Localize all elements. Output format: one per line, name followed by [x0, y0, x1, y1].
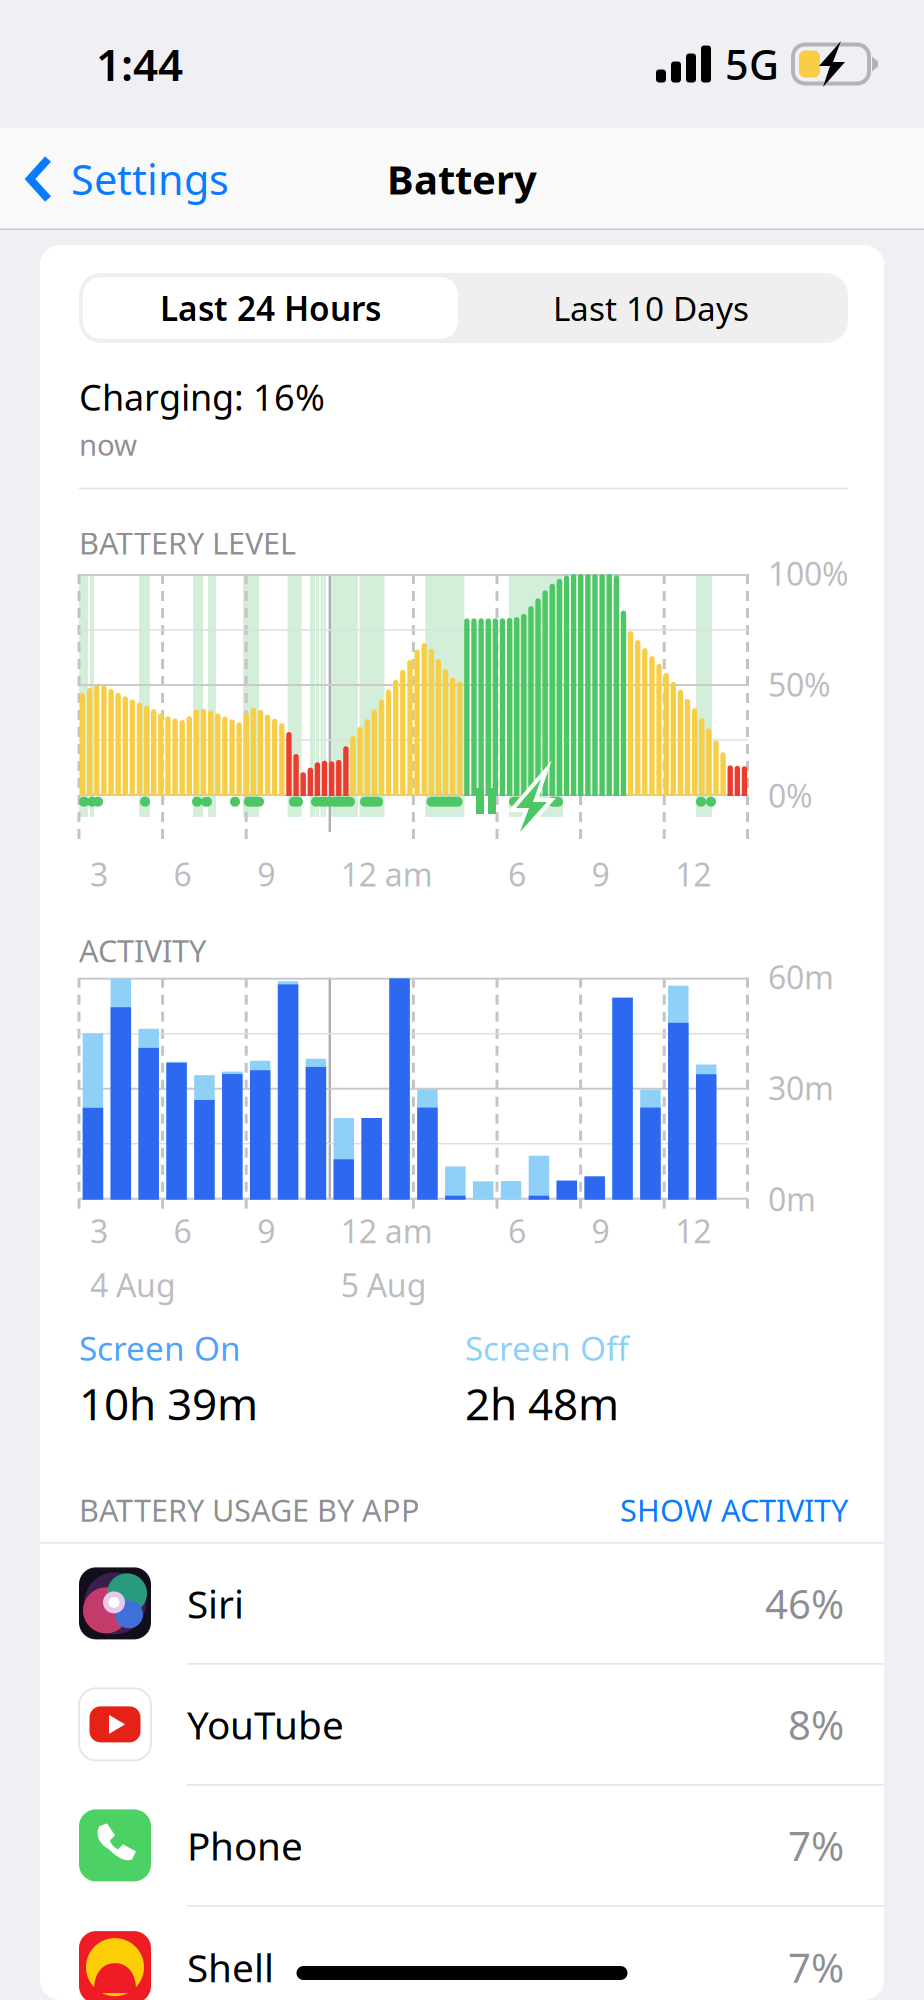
staticText: 9 — [257, 853, 275, 895]
staticText: 10h 39m — [79, 1374, 258, 1432]
staticText: 0% — [768, 774, 813, 816]
staticText: 7% — [788, 1941, 844, 1994]
staticText: Last 10 Days — [553, 286, 749, 330]
staticText: Charging: 16% — [79, 373, 325, 421]
staticText: now — [79, 425, 137, 464]
button[interactable]: Phone — [40, 1786, 884, 1907]
staticText: 60m — [768, 956, 834, 998]
staticText: Screen Off — [465, 1326, 629, 1370]
staticText: 46% — [765, 1577, 844, 1630]
staticText: Phone — [187, 1820, 303, 1871]
staticText: 100% — [768, 552, 849, 594]
button[interactable]: Last 24 Hours — [83, 277, 458, 339]
button[interactable]: YouTube — [40, 1665, 884, 1786]
staticText: 7% — [788, 1819, 844, 1872]
staticText: 50% — [768, 663, 831, 705]
staticText: 9 — [257, 1209, 275, 1252]
staticText: ACTIVITY — [79, 930, 206, 971]
staticText: Battery — [387, 152, 537, 205]
staticText: 30m — [768, 1067, 834, 1109]
staticText: 6 — [174, 1209, 192, 1252]
staticText: Last 24 Hours — [160, 286, 381, 330]
staticText: Siri — [187, 1578, 244, 1629]
staticText: 6 — [174, 853, 192, 895]
staticText: 4 Aug — [90, 1263, 176, 1306]
button[interactable]: Settings — [0, 128, 247, 230]
staticText: 12 am — [341, 1209, 433, 1252]
staticText: SHOW ACTIVITY — [620, 1489, 848, 1530]
staticText: 8% — [788, 1698, 844, 1751]
button[interactable]: Last 10 Days — [458, 277, 844, 339]
staticText: 9 — [592, 1209, 610, 1252]
staticText: 5G — [725, 37, 779, 91]
staticText: 1:44 — [96, 35, 183, 93]
button[interactable]: Siri — [40, 1544, 884, 1665]
staticText: 6 — [508, 853, 526, 895]
staticText: 12 — [675, 1209, 711, 1252]
staticText: 2h 48m — [465, 1374, 619, 1432]
button[interactable]: SHOW ACTIVITY — [620, 1489, 848, 1530]
staticText: 3 — [90, 1209, 108, 1252]
staticText: Settings — [71, 152, 229, 206]
staticText: Screen On — [79, 1326, 241, 1370]
staticText: 12 am — [341, 853, 433, 895]
staticText: 3 — [90, 853, 108, 895]
staticText: BATTERY LEVEL — [79, 522, 296, 563]
staticText: BATTERY USAGE BY APP — [79, 1489, 420, 1530]
staticText: 5 Aug — [341, 1263, 427, 1306]
staticText: 12 — [675, 853, 711, 895]
staticText: 9 — [592, 853, 610, 895]
staticText: Shell — [187, 1941, 274, 1993]
staticText: 6 — [508, 1209, 526, 1252]
button[interactable]: Shell — [40, 1907, 884, 2000]
staticText: 0m — [768, 1178, 816, 1220]
staticText: YouTube — [187, 1699, 344, 1750]
